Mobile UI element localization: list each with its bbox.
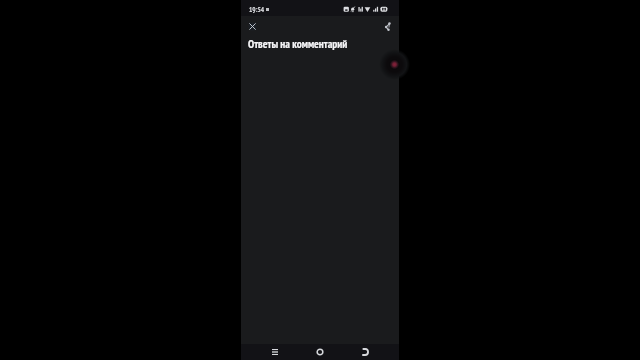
staticText: 19:54 (249, 5, 265, 14)
button[interactable]: Recent apps (241, 344, 307, 360)
button[interactable]: Home (307, 344, 333, 360)
button[interactable]: Back (333, 344, 399, 360)
staticText: Ответы на комментарий (248, 37, 348, 51)
button[interactable]: Share (379, 17, 398, 36)
button[interactable]: Close (243, 17, 262, 36)
button[interactable]: Recording indicator (379, 49, 410, 80)
